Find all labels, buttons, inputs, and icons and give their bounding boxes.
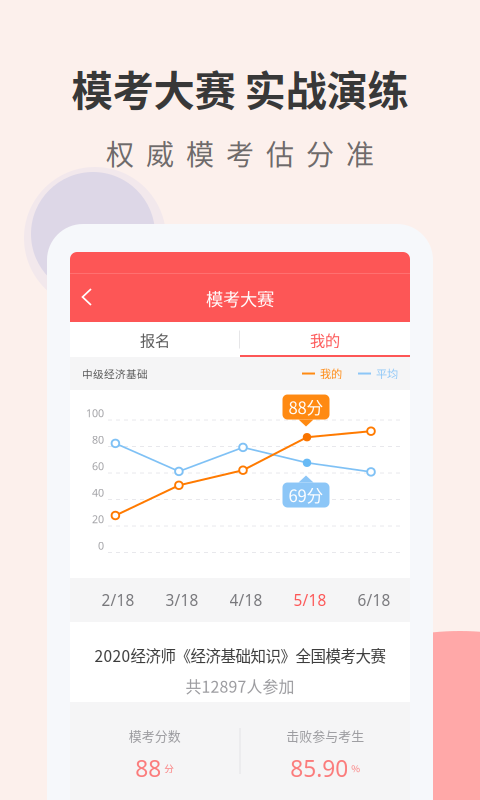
staticText: 共12897人参加	[185, 674, 294, 697]
staticText: 85.90	[290, 753, 348, 784]
button[interactable]: 报名	[70, 322, 240, 357]
staticText: 我的	[310, 328, 340, 350]
staticText: 模考分数	[129, 726, 181, 745]
button[interactable]: 5/18	[278, 578, 342, 622]
staticText: 69分	[288, 483, 323, 507]
button[interactable]: 我的	[240, 322, 410, 357]
button[interactable]: 6/18	[342, 578, 406, 622]
staticText: 20	[92, 512, 104, 526]
staticText: 5/18	[293, 590, 326, 610]
staticText: 2/18	[101, 590, 134, 610]
staticText: 88分	[288, 395, 323, 419]
staticText: 中级经济基础	[82, 366, 148, 381]
staticText: 0	[98, 538, 104, 553]
staticText: 88	[135, 753, 161, 784]
staticText: 2020经济师《经济基础知识》全国模考大赛	[94, 644, 385, 666]
staticText: 平均	[376, 365, 398, 382]
staticText: 4/18	[229, 590, 262, 610]
staticText: 权 威 模 考 估 分 准	[106, 133, 374, 173]
staticText: 6/18	[357, 590, 390, 610]
staticText: 80	[92, 432, 104, 447]
staticText: 分	[164, 761, 174, 775]
staticText: 我的	[320, 365, 342, 382]
staticText: 40	[92, 485, 104, 500]
staticText: 模考大赛	[206, 285, 274, 311]
staticText: 3/18	[165, 590, 198, 610]
button[interactable]: Back	[70, 274, 104, 322]
staticText: 100	[86, 406, 104, 420]
staticText: 击败参与考生	[286, 726, 364, 745]
button[interactable]: 2/18	[86, 578, 150, 622]
staticText: 模考大赛 实战演练	[71, 58, 408, 118]
staticText: 60	[92, 459, 104, 473]
staticText: %	[351, 761, 360, 775]
button[interactable]: 4/18	[214, 578, 278, 622]
staticText: 报名	[140, 328, 170, 350]
button[interactable]: 3/18	[150, 578, 214, 622]
